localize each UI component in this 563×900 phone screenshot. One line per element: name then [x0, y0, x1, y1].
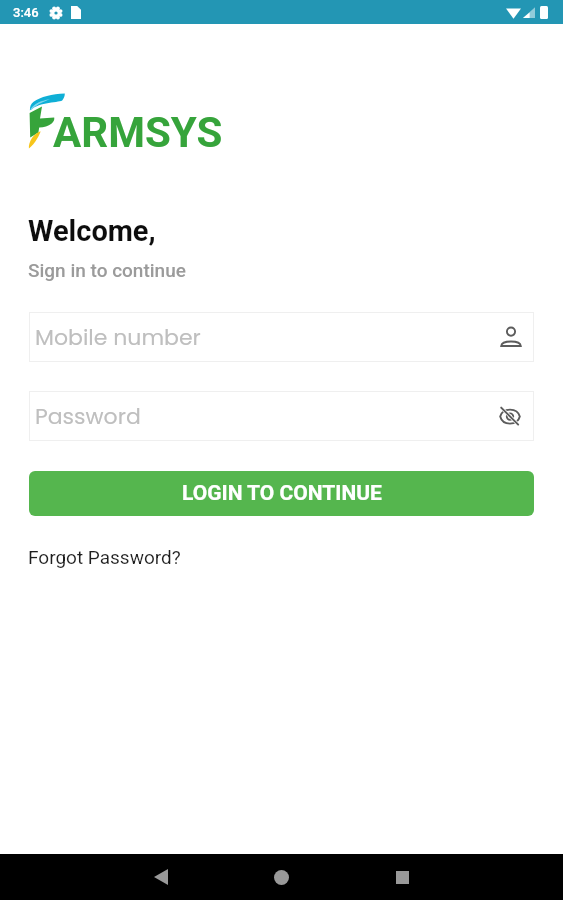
staticText: Forgot Password? [28, 546, 181, 568]
staticText: Sign in to continue [28, 259, 186, 281]
button[interactable]: Password [29, 391, 534, 441]
button[interactable]: Forgot Password? [28, 546, 181, 568]
staticText: Password [35, 401, 141, 432]
other: User account [500, 326, 522, 348]
staticText: Welcome, [28, 214, 156, 248]
other: Show password [498, 404, 522, 428]
button[interactable]: LOGIN TO CONTINUE [29, 471, 534, 516]
staticText: LOGIN TO CONTINUE [182, 481, 382, 506]
staticText: Mobile number [35, 322, 201, 353]
button[interactable]: Back [101, 854, 221, 900]
button[interactable]: Home [221, 854, 342, 900]
staticText: 3:46 [13, 5, 39, 20]
button[interactable]: Mobile number [29, 312, 534, 362]
staticText: ARMSYS [53, 108, 223, 157]
button[interactable]: Recent apps [342, 854, 462, 900]
